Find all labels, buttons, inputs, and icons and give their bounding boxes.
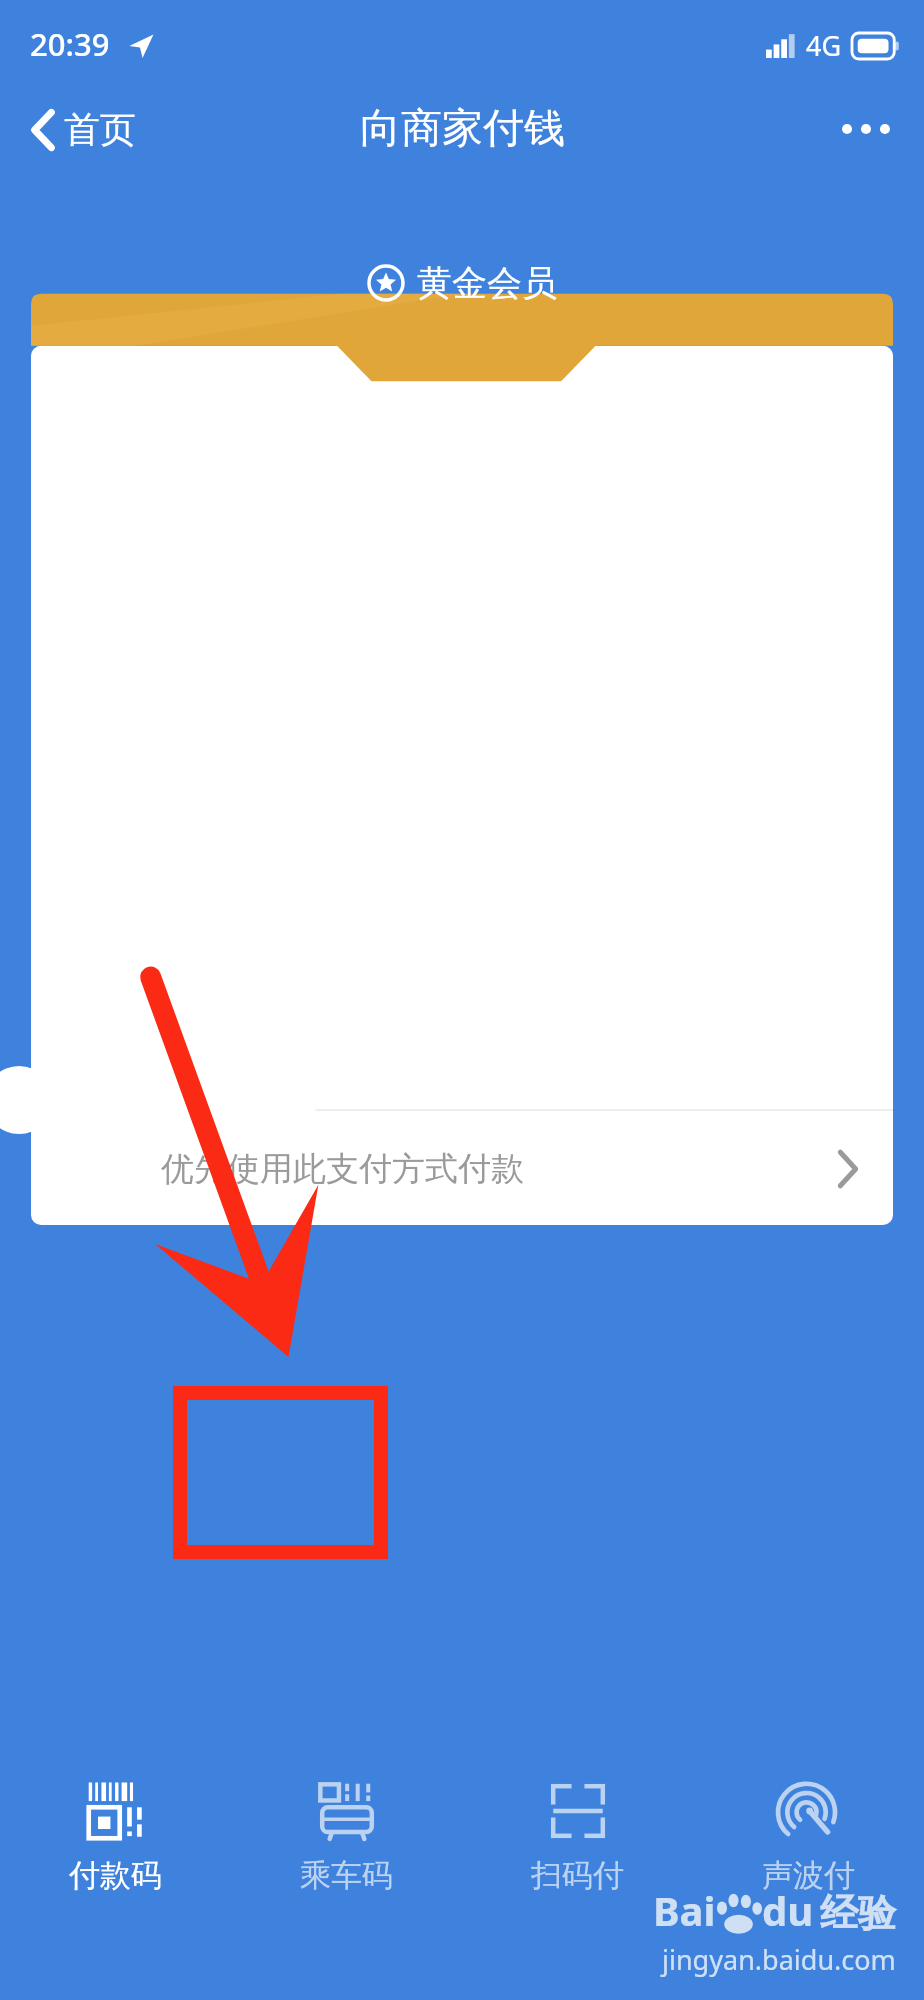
staticText: 乘车码 [300, 1856, 393, 1895]
staticText: 向商家付钱 [360, 103, 565, 155]
staticText: 扫码付 [531, 1856, 624, 1895]
button[interactable]: 首页 [22, 99, 146, 160]
staticText: jingyan.baidu.com [662, 1941, 896, 1978]
button[interactable]: More options [826, 105, 906, 153]
staticText: du [762, 1883, 814, 1937]
staticText: 优先使用此支付方式付款 [161, 1148, 524, 1190]
button[interactable]: 付款码 [0, 1760, 231, 1950]
button[interactable]: 扫码付 [462, 1760, 693, 1950]
button[interactable]: 乘车码 [231, 1760, 462, 1950]
staticText: Bai [653, 1883, 716, 1937]
button[interactable]: 声波付 [693, 1760, 924, 1950]
staticText: 20:39 [30, 23, 110, 65]
staticText: 4G [806, 27, 842, 64]
staticText: 声波付 [762, 1856, 855, 1895]
staticText: 经验 [820, 1889, 896, 1937]
button[interactable]: 优先使用此支付方式付款 [31, 1113, 893, 1225]
staticText: 付款码 [69, 1856, 162, 1895]
staticText: 黄金会员 [417, 261, 557, 305]
staticText: 首页 [64, 107, 136, 152]
